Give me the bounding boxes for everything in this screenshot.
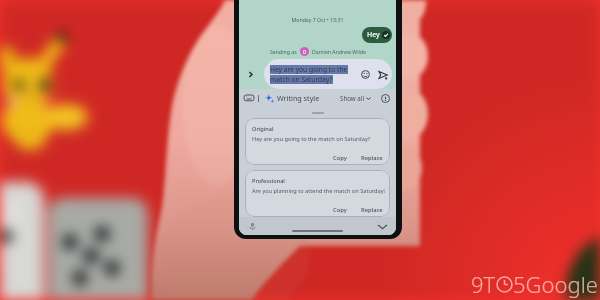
staticText: Show all	[340, 94, 364, 102]
button[interactable]: Emoji	[359, 68, 372, 81]
staticText: Hey	[367, 30, 380, 40]
button[interactable]: Professional	[245, 170, 390, 217]
button[interactable]: Copy	[331, 206, 349, 214]
staticText: Damien Andrew Wilde	[312, 48, 366, 55]
button[interactable]: Show all	[338, 91, 373, 105]
button[interactable]: Replace	[359, 154, 385, 162]
button[interactable]: Replace	[359, 206, 385, 214]
staticText: 9T	[471, 269, 496, 299]
staticText: Hey are you going to the	[270, 65, 348, 74]
staticText: Monday 7 Oct • 13:31	[239, 16, 396, 23]
button[interactable]: Expand actions	[245, 69, 256, 80]
staticText: Are you planning to attend the match on …	[252, 187, 385, 195]
staticText: Original	[252, 125, 274, 133]
button[interactable]: Copy	[331, 154, 349, 162]
button[interactable]: Hey	[362, 27, 392, 43]
staticText: Writing style	[277, 93, 320, 103]
button[interactable]: Voice input	[245, 219, 259, 233]
button[interactable]: Collapse	[374, 218, 390, 234]
staticText: match on Saturday?	[270, 75, 333, 84]
button[interactable]: Info	[379, 92, 391, 104]
button[interactable]: Send	[376, 68, 389, 81]
button[interactable]: Original	[245, 118, 390, 165]
staticText: 5Google	[513, 269, 598, 299]
staticText: D	[303, 49, 307, 55]
staticText: Professional	[252, 177, 285, 185]
staticText: Hey are you going to the match on Saturd…	[252, 135, 371, 143]
button[interactable]: Keyboard	[243, 92, 255, 104]
staticText: Sending as	[270, 48, 297, 55]
